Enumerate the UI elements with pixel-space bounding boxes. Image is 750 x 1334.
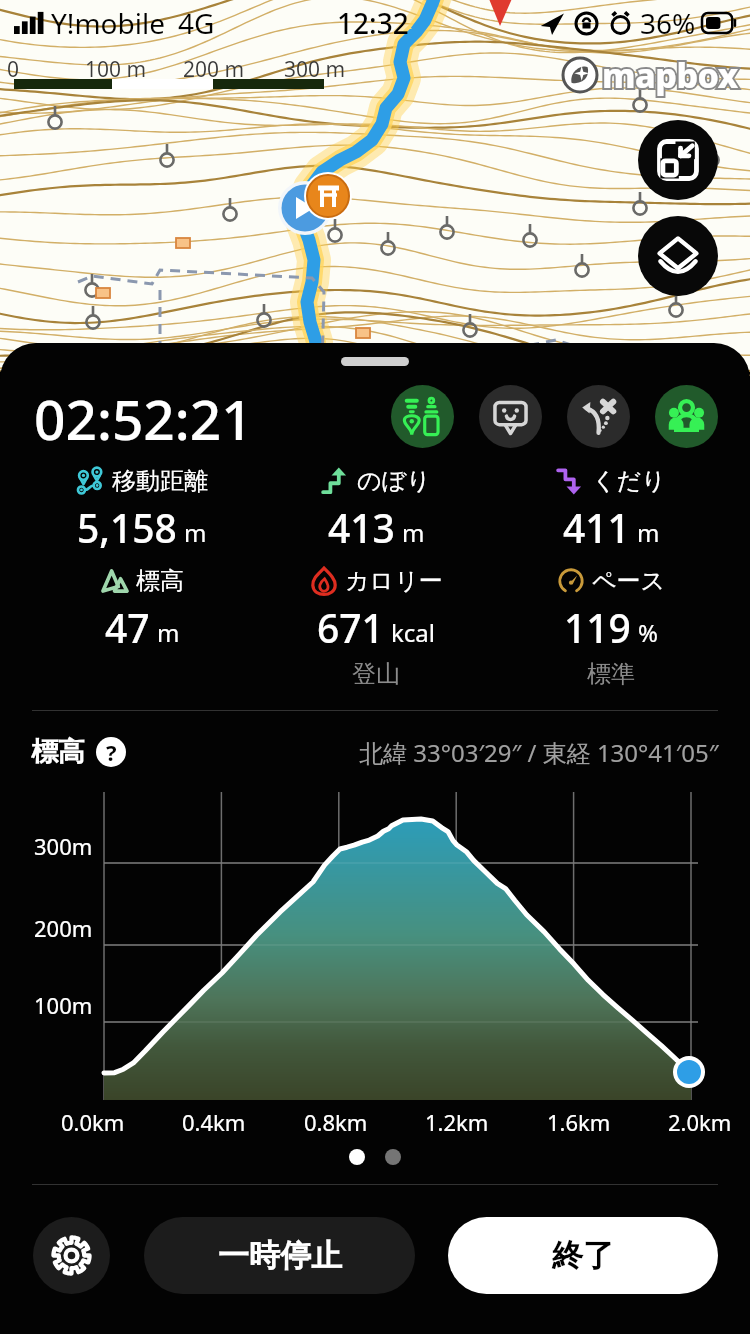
staticText: m	[637, 516, 660, 549]
staticText: 標高	[31, 735, 85, 769]
staticText: 4G	[178, 4, 215, 42]
staticText: 移動距離	[112, 466, 208, 496]
staticText: 413	[328, 501, 395, 554]
staticText: m	[184, 516, 207, 549]
button[interactable]: Off route	[567, 385, 630, 448]
staticText: 0.0km	[61, 1107, 125, 1137]
staticText: 36%	[640, 4, 696, 42]
button[interactable]: Fit route to screen	[638, 120, 718, 200]
staticText: 100 m	[85, 55, 147, 84]
staticText: 411	[563, 501, 630, 554]
staticText: 12:32	[337, 4, 409, 42]
button[interactable]: Settings	[33, 1217, 110, 1294]
staticText: mapbox	[602, 52, 738, 98]
staticText: ペース	[592, 566, 666, 596]
button[interactable]: 終了	[448, 1217, 718, 1294]
staticText: kcal	[391, 616, 435, 649]
staticText: 100m	[34, 990, 93, 1020]
staticText: 47	[105, 601, 150, 654]
staticText: くだり	[592, 466, 666, 496]
staticText: m	[402, 516, 425, 549]
staticText: 登山	[352, 659, 400, 689]
staticText: 0	[7, 55, 20, 84]
button[interactable]: 一時停止	[144, 1217, 415, 1294]
staticText: のぼり	[357, 466, 431, 496]
staticText: 2.0km	[668, 1107, 732, 1137]
staticText: Y!mobile	[51, 4, 165, 42]
staticText: 5,158	[77, 501, 177, 554]
button[interactable]: Map layers	[638, 216, 718, 296]
staticText: 119	[564, 601, 631, 654]
staticText: 0.4km	[182, 1107, 246, 1137]
staticText: 200m	[34, 913, 93, 943]
staticText: 1.2km	[425, 1107, 489, 1137]
button[interactable]: Location sharing	[391, 385, 454, 448]
staticText: 終了	[552, 1236, 614, 1275]
staticText: 一時停止	[218, 1236, 342, 1275]
staticText: 標高	[136, 566, 184, 596]
staticText: 300 m	[284, 55, 346, 84]
staticText: 1.6km	[547, 1107, 611, 1137]
staticText: 200 m	[183, 55, 245, 84]
staticText: %	[638, 616, 658, 649]
staticText: mapbox	[602, 52, 738, 98]
button[interactable]: Notes	[479, 385, 542, 448]
staticText: 671	[317, 601, 384, 654]
staticText: 0.8km	[304, 1107, 368, 1137]
button[interactable]: Help	[96, 737, 126, 767]
staticText: カロリー	[345, 566, 443, 596]
staticText: 北緯 33°03′29″ / 東経 130°41′05″	[359, 736, 719, 769]
staticText: ?	[106, 737, 117, 767]
staticText: m	[157, 616, 180, 649]
staticText: 標準	[587, 659, 635, 689]
staticText: 02:52:21	[34, 381, 253, 456]
staticText: 300m	[34, 831, 93, 861]
button[interactable]: Group	[655, 385, 718, 448]
